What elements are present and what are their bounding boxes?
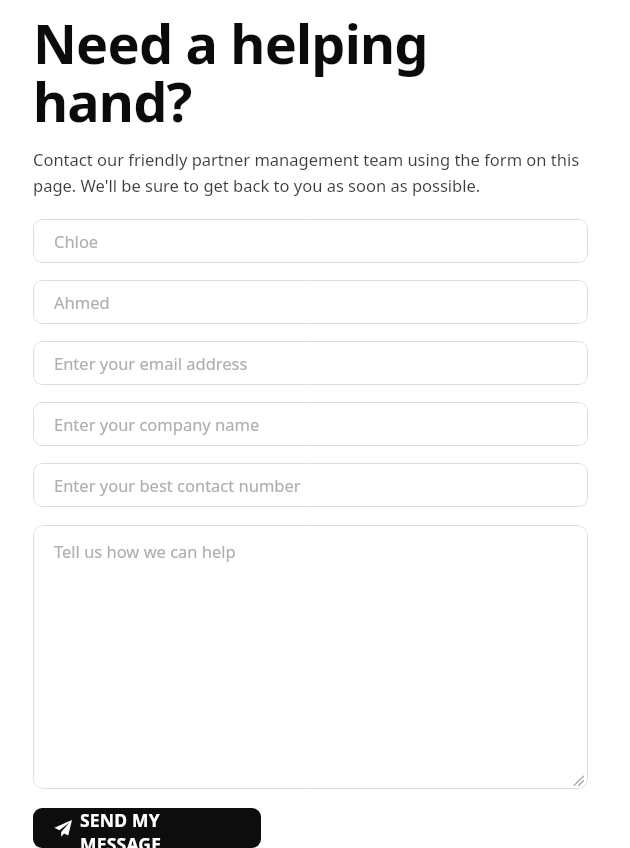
staticText: Contact our friendly partner management …	[33, 148, 588, 197]
staticText: Need a helping hand?	[33, 18, 588, 134]
button[interactable]: Tell us how we can help	[33, 525, 588, 789]
button[interactable]: Enter your company name	[33, 402, 588, 446]
button[interactable]: Enter your email address	[33, 341, 588, 385]
other: Send	[54, 819, 72, 837]
staticText: Ahmed	[54, 291, 110, 313]
staticText: Enter your company name	[54, 413, 260, 435]
button[interactable]: Chloe	[33, 219, 588, 263]
button[interactable]: Send	[33, 808, 261, 848]
staticText: Chloe	[54, 230, 99, 252]
staticText: Enter your email address	[54, 352, 248, 374]
staticText: Enter your best contact number	[54, 474, 301, 496]
staticText: Tell us how we can help	[54, 540, 236, 562]
button[interactable]: Ahmed	[33, 280, 588, 324]
staticText: SEND MY MESSAGE	[80, 808, 240, 848]
button[interactable]: Enter your best contact number	[33, 463, 588, 507]
